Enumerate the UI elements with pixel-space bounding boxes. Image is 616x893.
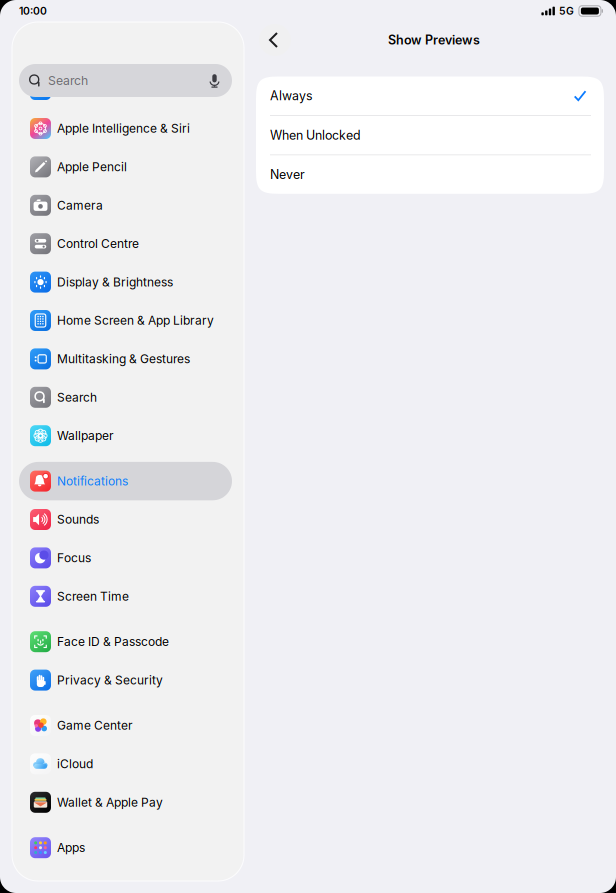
- button[interactable]: Back: [258, 23, 292, 57]
- staticText: Always: [270, 88, 313, 103]
- button[interactable]: Wallet & Apple Pay: [19, 783, 232, 821]
- button[interactable]: Face ID & Passcode: [19, 622, 232, 661]
- button[interactable]: Apps: [19, 828, 232, 867]
- button[interactable]: Sounds: [19, 500, 232, 539]
- staticText: Notifications: [57, 474, 128, 488]
- staticText: Home Screen & App Library: [57, 313, 214, 328]
- staticText: Face ID & Passcode: [57, 634, 169, 649]
- button[interactable]: Focus: [19, 539, 232, 577]
- staticText: Show Previews: [388, 32, 480, 48]
- staticText: Search: [48, 73, 88, 88]
- staticText: iCloud: [57, 757, 93, 771]
- button[interactable]: Always: [256, 76, 604, 116]
- button[interactable]: Apple Pencil: [19, 148, 232, 186]
- staticText: 10:00: [19, 5, 47, 17]
- staticText: Screen Time: [57, 589, 129, 603]
- staticText: When Unlocked: [270, 128, 361, 143]
- staticText: Never: [270, 167, 305, 182]
- staticText: Apple Pencil: [57, 160, 127, 174]
- staticText: Sounds: [57, 512, 99, 527]
- button[interactable]: Privacy & Security: [19, 661, 232, 699]
- button[interactable]: Search: [19, 378, 232, 416]
- button[interactable]: Control Centre: [19, 224, 232, 263]
- staticText: Control Centre: [57, 236, 139, 251]
- staticText: Multitasking & Gestures: [57, 352, 190, 366]
- button[interactable]: Wallpaper: [19, 416, 232, 455]
- button[interactable]: Camera: [19, 186, 232, 224]
- button[interactable]: When Unlocked: [256, 116, 604, 155]
- staticText: Apple Intelligence & Siri: [57, 121, 190, 136]
- button[interactable]: Never: [256, 155, 604, 194]
- staticText: Game Center: [57, 718, 133, 733]
- button[interactable]: iCloud: [19, 745, 232, 783]
- staticText: 5G: [559, 5, 574, 17]
- staticText: Camera: [57, 198, 103, 212]
- button[interactable]: Search: [19, 64, 232, 97]
- button[interactable]: Display & Brightness: [19, 263, 232, 301]
- staticText: Display & Brightness: [57, 275, 173, 289]
- staticText: Wallpaper: [57, 428, 114, 443]
- staticText: Privacy & Security: [57, 673, 163, 687]
- staticText: Wallet & Apple Pay: [57, 795, 163, 809]
- staticText: Search: [57, 390, 97, 404]
- button[interactable]: Screen Time: [19, 577, 232, 615]
- button[interactable]: Multitasking & Gestures: [19, 340, 232, 378]
- button[interactable]: Notifications: [19, 462, 232, 500]
- staticText: Apps: [57, 840, 85, 855]
- button[interactable]: Apple Intelligence & Siri: [19, 109, 232, 148]
- staticText: Focus: [57, 551, 91, 565]
- button[interactable]: Home Screen & App Library: [19, 301, 232, 340]
- button[interactable]: Game Center: [19, 706, 232, 745]
